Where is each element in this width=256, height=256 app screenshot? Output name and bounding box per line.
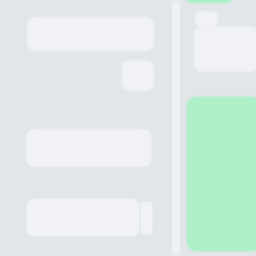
button[interactable]: Message [140,201,153,235]
button[interactable]: Message [26,16,155,52]
button[interactable]: Sent message [183,0,234,4]
button[interactable]: Conversation [185,95,256,253]
button[interactable]: Message [25,128,153,168]
button[interactable]: Message [193,25,256,73]
button[interactable]: Message [194,10,219,28]
button[interactable]: Message [121,59,155,92]
